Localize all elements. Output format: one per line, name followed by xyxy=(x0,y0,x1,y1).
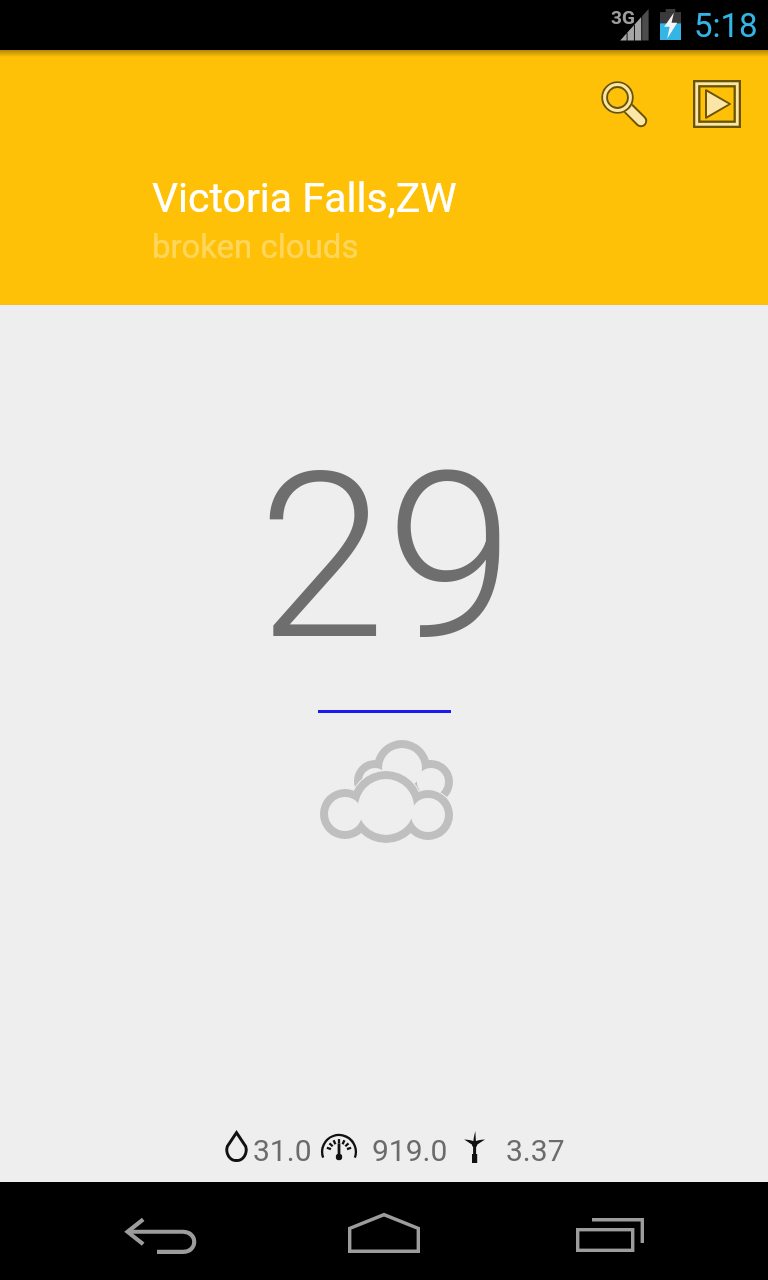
staticText: 5:18 xyxy=(694,6,758,45)
staticText: 3G xyxy=(611,6,635,28)
button[interactable]: Search xyxy=(589,69,661,141)
staticText: broken clouds xyxy=(152,227,359,266)
staticText: 31.0 xyxy=(253,1133,312,1168)
staticText: 919.0 xyxy=(372,1133,448,1168)
staticText: 3.37 xyxy=(506,1133,565,1168)
staticText: 29 xyxy=(2,422,768,693)
button[interactable]: Slideshow xyxy=(681,68,753,140)
button[interactable]: Recent apps xyxy=(546,1192,674,1278)
button[interactable]: Home xyxy=(320,1190,448,1276)
button[interactable]: Back xyxy=(96,1193,224,1279)
staticText: Victoria Falls,ZW xyxy=(152,174,457,222)
